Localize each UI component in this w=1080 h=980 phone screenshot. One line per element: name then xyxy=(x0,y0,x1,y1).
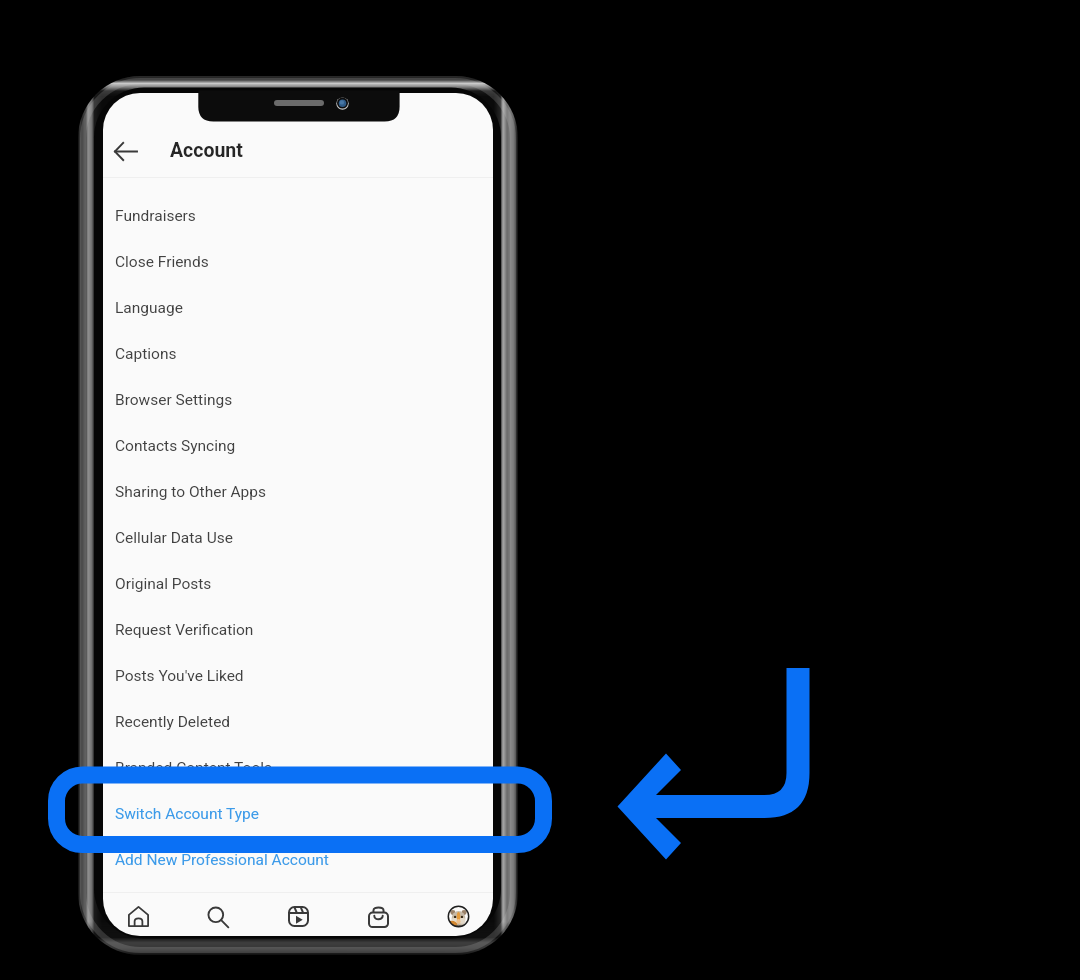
staticText: Switch Account Type xyxy=(115,805,260,823)
button[interactable]: Branded Content Tools xyxy=(103,745,493,791)
button[interactable]: Reels xyxy=(270,897,326,936)
staticText: Close Friends xyxy=(115,253,209,271)
button[interactable]: Sharing to Other Apps xyxy=(103,469,493,515)
staticText: Original Posts xyxy=(115,575,212,593)
button[interactable]: Fundraisers xyxy=(103,193,493,239)
staticText: Branded Content Tools xyxy=(115,759,273,777)
staticText: Fundraisers xyxy=(115,207,196,225)
staticText: Posts You've Liked xyxy=(115,667,244,685)
button[interactable]: Profile xyxy=(430,897,486,936)
button[interactable]: Back xyxy=(105,131,145,171)
staticText: Account xyxy=(170,139,243,162)
button[interactable]: Shop xyxy=(350,897,406,936)
button[interactable]: Switch Account Type xyxy=(103,791,493,837)
staticText: Add New Professional Account xyxy=(115,851,329,869)
button[interactable]: Request Verification xyxy=(103,607,493,653)
button[interactable]: Captions xyxy=(103,331,493,377)
button[interactable]: Cellular Data Use xyxy=(103,515,493,561)
button[interactable]: Recently Deleted xyxy=(103,699,493,745)
staticText: Captions xyxy=(115,345,177,363)
button[interactable]: Contacts Syncing xyxy=(103,423,493,469)
button[interactable]: Browser Settings xyxy=(103,377,493,423)
button[interactable]: Language xyxy=(103,285,493,331)
staticText: Request Verification xyxy=(115,621,254,639)
staticText: Browser Settings xyxy=(115,391,233,409)
staticText: Sharing to Other Apps xyxy=(115,483,267,501)
button[interactable]: Add New Professional Account xyxy=(103,837,493,883)
button[interactable]: Search xyxy=(190,897,246,936)
button[interactable]: Original Posts xyxy=(103,561,493,607)
staticText: Contacts Syncing xyxy=(115,437,236,455)
button[interactable]: Home xyxy=(110,897,166,936)
staticText: Language xyxy=(115,299,183,317)
button[interactable]: Posts You've Liked xyxy=(103,653,493,699)
staticText: Cellular Data Use xyxy=(115,529,233,547)
staticText: Recently Deleted xyxy=(115,713,231,731)
button[interactable]: Close Friends xyxy=(103,239,493,285)
